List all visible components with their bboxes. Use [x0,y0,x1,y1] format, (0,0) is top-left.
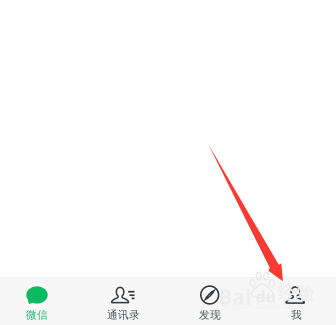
staticText: 通讯录 [107,308,140,321]
staticText: 经验 [277,282,315,305]
button[interactable]: 发现 [167,277,253,325]
button[interactable]: 通讯录 [80,277,166,325]
button[interactable]: 我 [253,277,336,325]
staticText: 微信 [26,308,48,321]
staticText: du [255,286,275,307]
button[interactable]: 微信 [0,277,80,325]
staticText: 我 [291,308,302,321]
staticText: 发现 [199,308,221,321]
staticText: Bai [218,282,251,310]
staticText: jingyan.baidu.com [221,299,303,311]
